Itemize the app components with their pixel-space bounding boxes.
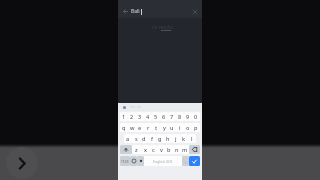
button[interactable]: c xyxy=(149,145,157,154)
button[interactable]: y xyxy=(160,123,168,132)
button[interactable]: m xyxy=(181,145,189,154)
button[interactable]: l xyxy=(188,134,196,143)
button[interactable]: 4 xyxy=(144,112,152,121)
button[interactable]: k xyxy=(180,134,188,143)
staticText: u xyxy=(170,124,174,131)
button[interactable]: Next video xyxy=(6,147,38,179)
button[interactable]: t xyxy=(152,123,160,132)
staticText: f xyxy=(151,135,153,142)
button[interactable]: w xyxy=(128,123,136,132)
staticText: no results xyxy=(152,24,173,30)
staticText: e xyxy=(138,124,142,131)
button[interactable]: 8 xyxy=(176,112,184,121)
button[interactable]: d xyxy=(140,134,148,143)
staticText: z xyxy=(135,146,138,153)
button[interactable]: e xyxy=(136,123,144,132)
staticText: 0 xyxy=(194,113,198,120)
staticText: 1 xyxy=(122,113,126,120)
staticText: 2 xyxy=(130,113,134,120)
button[interactable]: g xyxy=(156,134,164,143)
button[interactable]: z xyxy=(132,145,141,154)
button[interactable]: n xyxy=(173,145,181,154)
button[interactable]: j xyxy=(172,134,180,143)
button[interactable]: Emoji xyxy=(130,156,137,166)
button[interactable]: Settings xyxy=(137,156,144,166)
button[interactable]: a xyxy=(124,134,132,143)
button[interactable]: 2 xyxy=(128,112,136,121)
button[interactable]: 5 xyxy=(152,112,160,121)
staticText: 3 xyxy=(138,113,142,120)
button[interactable]: i xyxy=(176,123,184,132)
staticText: c xyxy=(152,146,155,153)
button[interactable]: o xyxy=(184,123,192,132)
button[interactable]: Clear search xyxy=(189,6,200,17)
staticText: a xyxy=(126,135,130,142)
staticText: s xyxy=(135,135,138,142)
button[interactable]: Google Assistant xyxy=(123,106,126,109)
button[interactable]: Search xyxy=(189,156,200,166)
button[interactable]: q xyxy=(120,123,128,132)
staticText: k xyxy=(182,135,186,142)
staticText: l xyxy=(191,135,193,142)
staticText: 9 xyxy=(186,113,190,120)
button[interactable]: 7 xyxy=(168,112,176,121)
staticText: . xyxy=(185,158,187,165)
staticText: o xyxy=(186,124,190,131)
staticText: b xyxy=(167,146,171,153)
button[interactable]: r xyxy=(144,123,152,132)
staticText: h xyxy=(166,135,170,142)
button[interactable]: 9 xyxy=(184,112,192,121)
staticText: 7 xyxy=(170,113,174,120)
button[interactable]: 1 xyxy=(120,112,128,121)
staticText: g xyxy=(158,135,162,142)
button[interactable]: Shift xyxy=(120,145,132,154)
staticText: 4 xyxy=(146,113,150,120)
staticText: v xyxy=(160,146,163,153)
button[interactable]: Space xyxy=(144,156,182,166)
staticText: ?123 xyxy=(121,159,129,164)
button[interactable]: x xyxy=(141,145,149,154)
button[interactable]: 3 xyxy=(136,112,144,121)
staticText: w xyxy=(130,124,135,131)
button[interactable]: 0 xyxy=(192,112,200,121)
staticText: English (US) xyxy=(153,159,173,164)
staticText: p xyxy=(194,124,198,131)
button[interactable]: h xyxy=(164,134,172,143)
button[interactable]: Backspace xyxy=(189,145,200,154)
staticText: r xyxy=(147,124,150,131)
staticText: Bali xyxy=(131,8,140,15)
staticText: t xyxy=(155,124,158,131)
staticText: d xyxy=(142,135,146,142)
button[interactable]: 6 xyxy=(160,112,168,121)
button[interactable]: u xyxy=(168,123,176,132)
staticText: 5 xyxy=(154,113,158,120)
staticText: q xyxy=(122,124,126,131)
button[interactable]: Back xyxy=(120,6,131,17)
button[interactable]: f xyxy=(148,134,156,143)
staticText: j xyxy=(175,135,177,142)
staticText: i xyxy=(179,124,181,131)
staticText: 8 xyxy=(178,113,182,120)
button[interactable]: b xyxy=(165,145,173,154)
button[interactable]: v xyxy=(157,145,165,154)
staticText: n xyxy=(175,146,179,153)
button[interactable]: Period xyxy=(182,156,189,166)
button[interactable]: Symbols xyxy=(120,156,130,166)
staticText: y xyxy=(163,124,166,131)
staticText: x xyxy=(144,146,147,153)
button[interactable]: p xyxy=(192,123,200,132)
staticText: 6 xyxy=(162,113,166,120)
staticText: m xyxy=(182,146,188,153)
button[interactable]: s xyxy=(132,134,140,143)
